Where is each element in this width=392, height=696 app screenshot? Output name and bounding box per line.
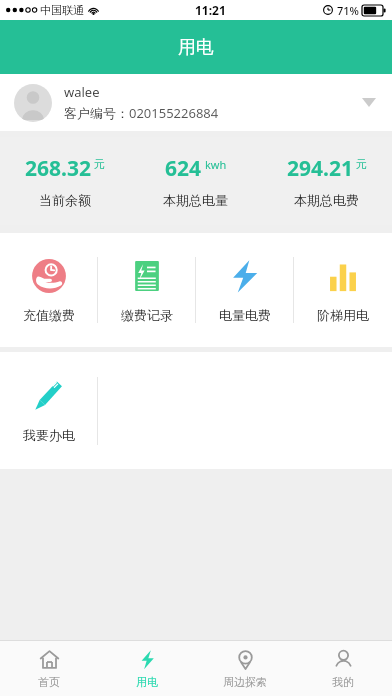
staticText: kwh (205, 157, 227, 172)
button[interactable]: 缴费记录 (98, 233, 196, 347)
button[interactable]: 我要办电 (0, 352, 98, 469)
staticText: 本期总电费 (294, 192, 359, 208)
staticText: 充值缴费 (23, 307, 75, 323)
staticText: 周边探索 (223, 675, 267, 689)
button[interactable]: 首页 (0, 641, 98, 696)
staticText: 294.21 (287, 154, 353, 183)
button[interactable]: walee (0, 74, 392, 131)
staticText: 中国联通 (40, 3, 84, 17)
staticText: 阶梯用电 (317, 307, 369, 323)
staticText: 我要办电 (23, 427, 75, 443)
staticText: 用电 (178, 36, 214, 59)
button[interactable]: 用电 (98, 641, 196, 696)
staticText: 用电 (136, 675, 158, 689)
staticText: 元 (356, 157, 367, 171)
staticText: 71% (337, 3, 359, 18)
button[interactable]: 阶梯用电 (294, 233, 392, 347)
staticText: 缴费记录 (121, 307, 173, 323)
staticText: 首页 (38, 675, 60, 689)
other: Expand account selector (362, 98, 376, 107)
staticText: walee (64, 83, 100, 101)
staticText: 本期总电量 (163, 192, 228, 208)
staticText: 元 (94, 157, 105, 171)
staticText: 我的 (332, 675, 354, 689)
button[interactable]: 我的 (294, 641, 392, 696)
button[interactable]: 周边探索 (196, 641, 294, 696)
staticText: 当前余额 (39, 192, 91, 208)
staticText: 客户编号： (64, 105, 129, 121)
staticText: 电量电费 (219, 307, 271, 323)
staticText: 624 (165, 154, 202, 183)
button[interactable]: 电量电费 (196, 233, 294, 347)
staticText: 11:21 (195, 2, 226, 18)
staticText: 268.32 (25, 154, 91, 183)
button[interactable]: 充值缴费 (0, 233, 98, 347)
staticText: 020155226884 (129, 104, 219, 122)
